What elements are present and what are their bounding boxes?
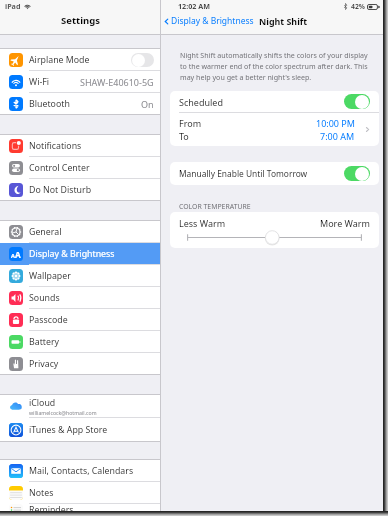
staticText: From: [179, 117, 202, 129]
staticText: More Warm: [320, 217, 370, 229]
button[interactable]: iCloud: [0, 395, 160, 418]
staticText: To: [179, 130, 189, 142]
staticText: Passcode: [29, 314, 68, 326]
button[interactable]: Notes: [0, 482, 160, 504]
other: Back: [162, 17, 171, 26]
button[interactable]: Mail, Contacts, Calendars: [0, 460, 160, 482]
button[interactable]: Control Center: [0, 157, 160, 179]
staticText: On: [141, 98, 154, 110]
button[interactable]: General: [0, 221, 160, 243]
button[interactable]: Wi-Fi: [0, 71, 160, 93]
staticText: 42%: [351, 2, 365, 11]
staticText: Manually Enable Until Tomorrow: [179, 168, 308, 179]
staticText: iPad: [5, 1, 21, 11]
staticText: 10:00 PM: [316, 117, 355, 129]
button[interactable]: Scheduled: [179, 91, 370, 112]
button[interactable]: Airplane Mode: [0, 49, 160, 71]
staticText: Do Not Disturb: [29, 184, 92, 196]
staticText: COLOR TEMPERATURE: [179, 202, 251, 211]
staticText: Notes: [29, 487, 54, 499]
staticText: iCloud: [29, 397, 56, 409]
button[interactable]: Manually Enable Until Tomorrow: [170, 162, 379, 185]
staticText: A: [11, 252, 15, 260]
button[interactable]: Airplane Mode toggle: [131, 53, 154, 67]
staticText: Airplane Mode: [29, 54, 90, 66]
staticText: SHAW-E40610-5G: [80, 76, 154, 88]
button[interactable]: Wallpaper: [0, 265, 160, 287]
button[interactable]: From: [179, 113, 372, 146]
button[interactable]: Notifications: [0, 135, 160, 157]
button[interactable]: Passcode: [0, 309, 160, 331]
staticText: Display & Brightness: [171, 15, 254, 27]
button[interactable]: Reminders: [0, 504, 160, 516]
staticText: Bluetooth: [29, 98, 70, 110]
button[interactable]: Do Not Disturb: [0, 179, 160, 201]
button[interactable]: Battery: [0, 331, 160, 353]
staticText: Less Warm: [179, 217, 226, 229]
staticText: Night Shift automatically shifts the col…: [180, 50, 376, 82]
button[interactable]: A: [0, 243, 160, 265]
staticText: Battery: [29, 336, 60, 348]
staticText: Settings: [61, 14, 100, 27]
staticText: Night Shift: [259, 15, 308, 27]
staticText: Reminders: [29, 504, 74, 516]
button[interactable]: Privacy: [0, 353, 160, 375]
button[interactable]: Bluetooth: [0, 93, 160, 115]
staticText: Control Center: [29, 162, 90, 174]
staticText: 7:00 AM: [320, 130, 355, 142]
staticText: Sounds: [29, 292, 60, 304]
button[interactable]: Back: [162, 15, 308, 27]
button[interactable]: Color temperature slider: [187, 230, 362, 245]
staticText: Wallpaper: [29, 270, 71, 282]
staticText: Wi-Fi: [29, 76, 50, 88]
button[interactable]: Sounds: [0, 287, 160, 309]
button[interactable]: Manually Enable toggle: [344, 166, 370, 181]
staticText: Display & Brightness: [29, 248, 115, 260]
button[interactable]: Scheduled toggle: [344, 94, 370, 109]
staticText: Notifications: [29, 140, 82, 152]
staticText: Mail, Contacts, Calendars: [29, 465, 134, 477]
staticText: williamelcock@hotmail.com: [29, 409, 97, 416]
staticText: iTunes & App Store: [29, 424, 108, 436]
staticText: A: [15, 249, 21, 260]
button[interactable]: iTunes & App Store: [0, 418, 160, 442]
staticText: 12:02 AM: [178, 1, 211, 11]
staticText: General: [29, 226, 62, 238]
staticText: Privacy: [29, 358, 59, 370]
staticText: Scheduled: [179, 96, 223, 108]
